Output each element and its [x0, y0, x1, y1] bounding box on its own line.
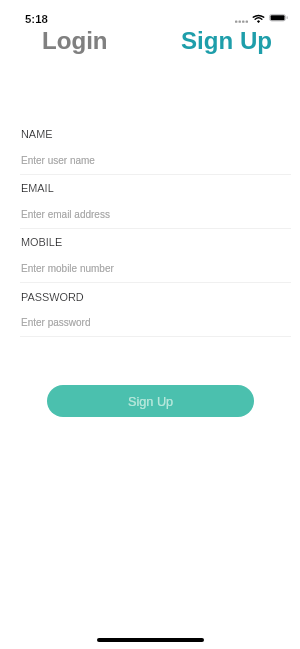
button[interactable]: NAME — [14, 123, 291, 178]
other: Cellular signal strength — [235, 20, 248, 23]
staticText: Enter user name — [21, 155, 95, 166]
button[interactable]: Sign Up — [47, 385, 254, 417]
staticText: MOBILE — [21, 236, 63, 248]
other: Wi-Fi connected — [253, 14, 264, 23]
staticText: Enter password — [21, 317, 91, 328]
other: Battery full — [269, 14, 288, 21]
staticText: Login — [42, 27, 108, 54]
button[interactable]: PASSWORD — [14, 285, 291, 340]
staticText: PASSWORD — [21, 291, 84, 303]
staticText: EMAIL — [21, 182, 54, 194]
staticText: NAME — [21, 128, 53, 140]
staticText: Enter email address — [21, 209, 110, 220]
button[interactable]: Login — [34, 23, 116, 58]
button[interactable]: Sign Up — [173, 23, 281, 58]
staticText: Sign Up — [181, 27, 273, 54]
staticText: Enter mobile number — [21, 263, 114, 274]
button[interactable]: MOBILE — [14, 231, 291, 286]
staticText: 5:18 — [25, 13, 48, 26]
button[interactable]: EMAIL — [14, 177, 291, 232]
staticText: Sign Up — [128, 395, 174, 409]
